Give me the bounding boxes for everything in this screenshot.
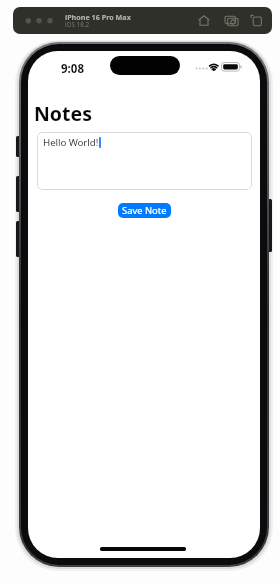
staticText: iPhone 16 Pro Max (65, 12, 131, 22)
button[interactable]: Save Note (118, 203, 171, 218)
button[interactable] (250, 14, 264, 28)
button[interactable] (224, 14, 240, 28)
button[interactable] (197, 14, 211, 28)
staticText: iOS 18.2 (65, 20, 90, 29)
staticText: Save Note (122, 204, 167, 217)
staticText: 9:08 (61, 61, 84, 74)
button[interactable]: Hello World! (37, 132, 252, 190)
staticText: Notes (34, 100, 92, 127)
staticText: Hello World! (43, 136, 99, 149)
